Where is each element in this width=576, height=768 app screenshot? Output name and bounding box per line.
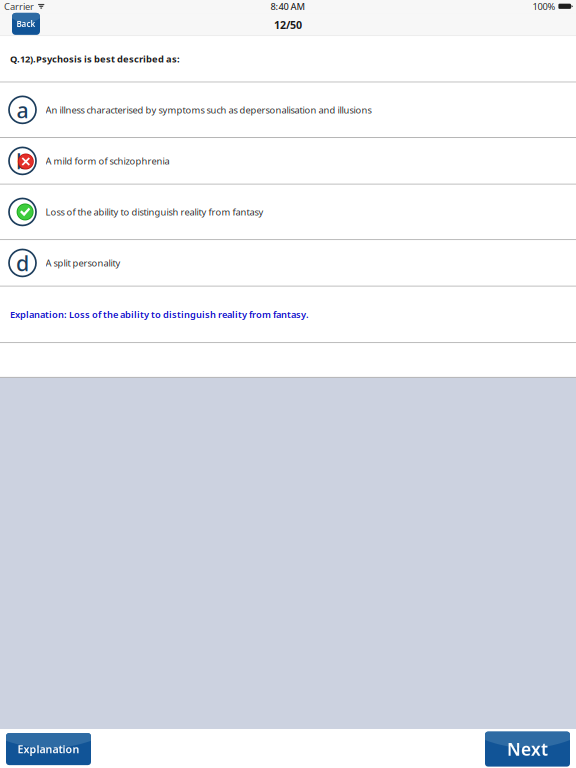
button[interactable]: b xyxy=(0,138,576,185)
button[interactable]: d xyxy=(0,240,576,287)
staticText: Loss of the ability to distinguish reali… xyxy=(45,206,263,218)
button[interactable]: Next xyxy=(485,732,570,767)
staticText: An illness characterised by symptoms suc… xyxy=(45,104,371,116)
staticText: 8:40 AM xyxy=(270,0,305,12)
staticText: A split personality xyxy=(45,257,120,269)
staticText: 100% xyxy=(532,0,555,12)
button[interactable]: Loss of the ability to distinguish reali… xyxy=(0,185,576,240)
staticText: 12/50 xyxy=(274,18,302,32)
staticText: b xyxy=(16,147,29,175)
staticText: A mild form of schizophrenia xyxy=(45,155,169,167)
staticText: Q.12).Psychosis is best described as: xyxy=(10,53,180,65)
staticText: a xyxy=(16,96,28,124)
staticText: Explanation xyxy=(17,742,79,756)
button[interactable]: Explanation xyxy=(6,733,91,765)
staticText: Carrier xyxy=(4,0,34,12)
staticText: Explanation: Loss of the ability to dist… xyxy=(10,308,309,321)
button[interactable]: a xyxy=(0,83,576,138)
staticText: d xyxy=(16,249,29,277)
staticText: Back xyxy=(16,19,35,29)
staticText: Next xyxy=(507,738,548,761)
button[interactable]: Back xyxy=(12,13,40,35)
